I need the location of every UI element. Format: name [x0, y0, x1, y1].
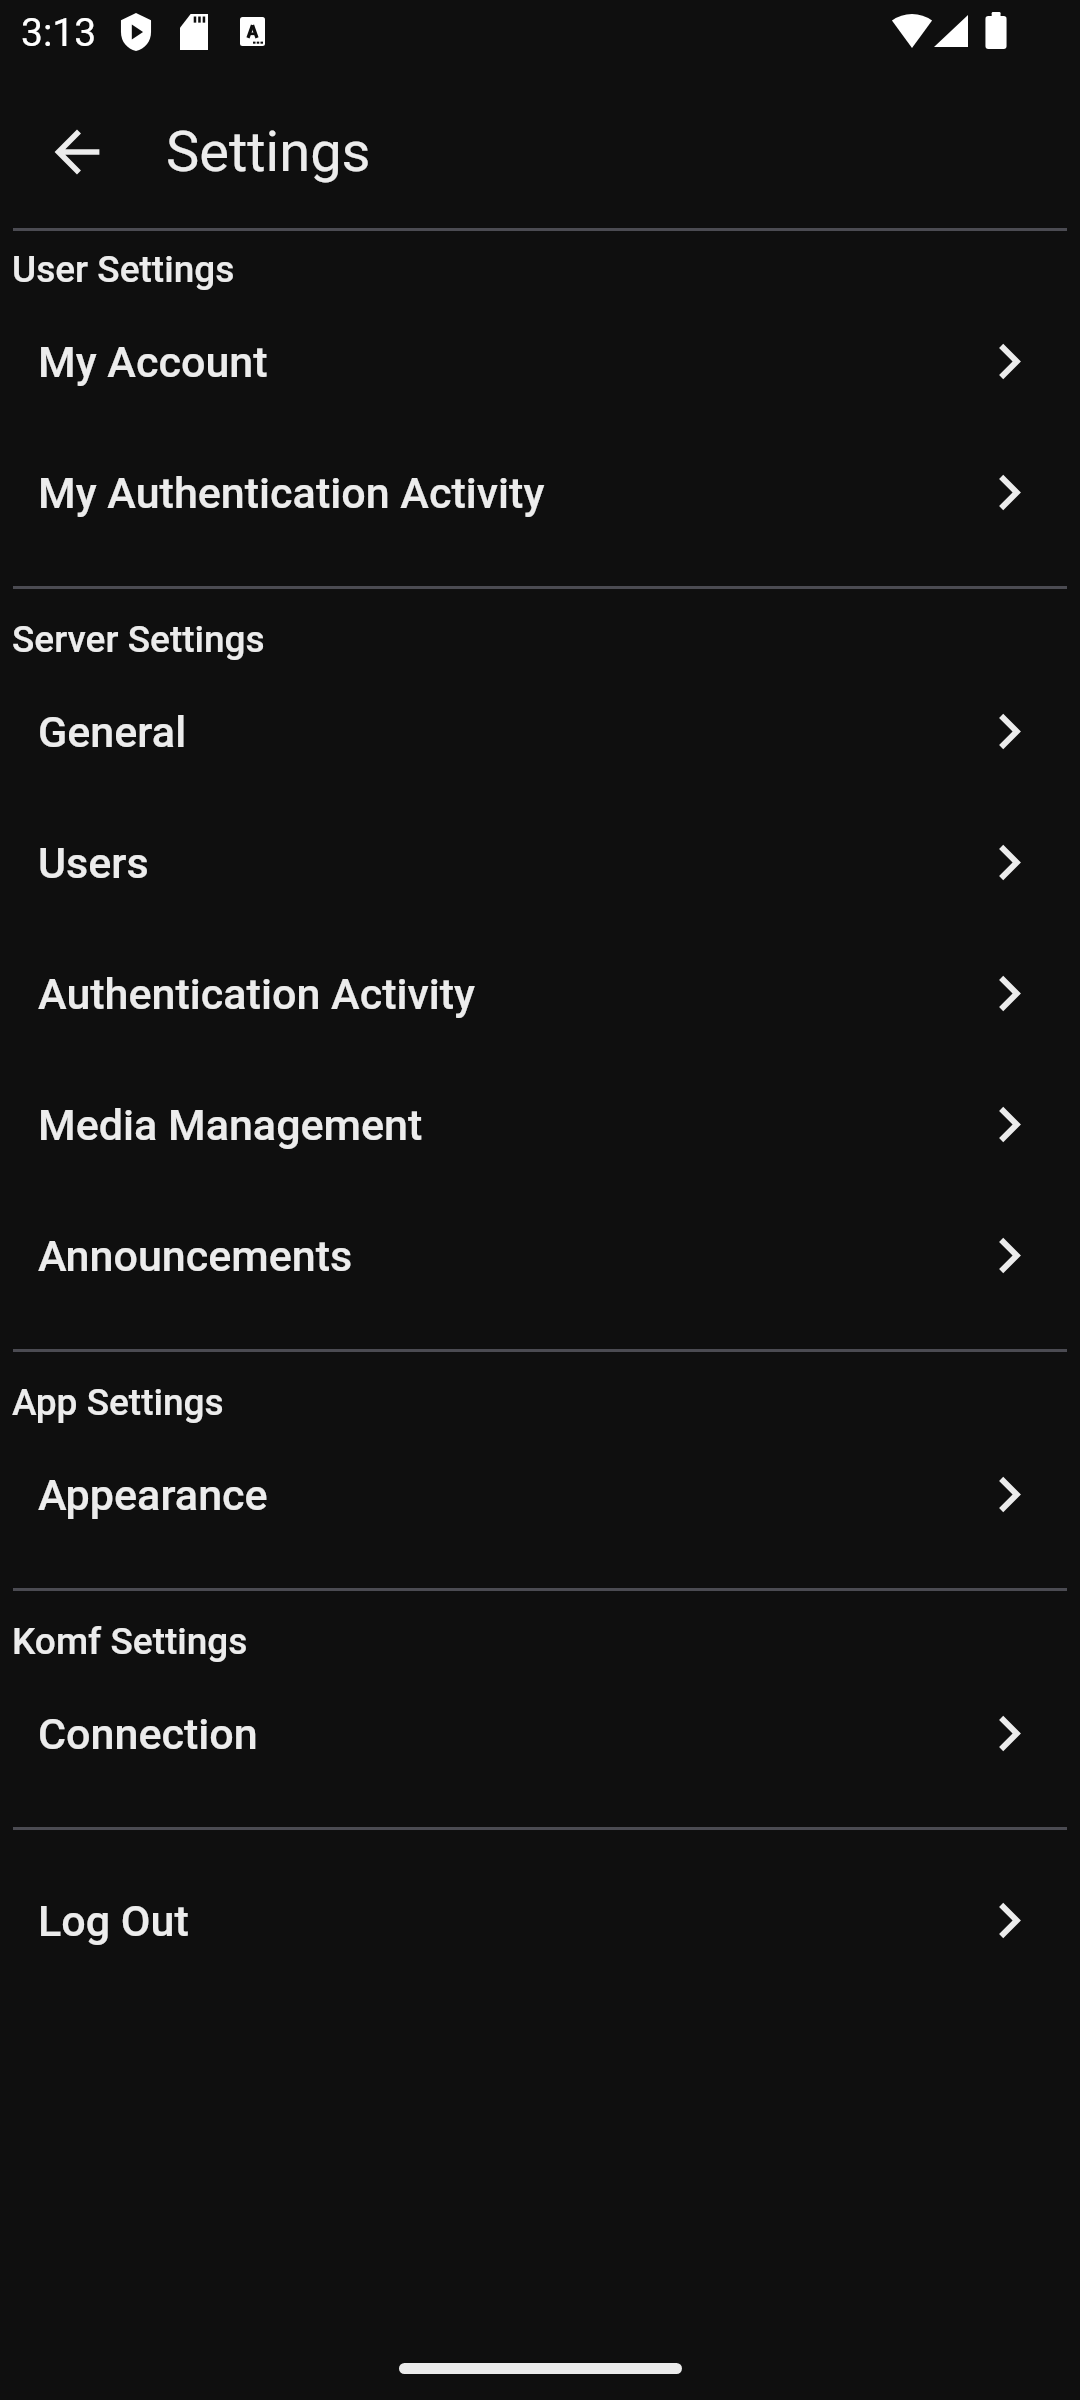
staticText: Log Out — [38, 1896, 980, 1946]
staticText: Media Management — [38, 1100, 980, 1150]
button[interactable]: Media Management — [0, 1059, 1080, 1190]
button[interactable]: My Authentication Activity — [0, 427, 1080, 558]
staticText: Authentication Activity — [38, 969, 980, 1019]
button[interactable]: Appearance — [0, 1429, 1080, 1560]
staticText: App Settings — [12, 1381, 224, 1424]
staticText: Settings — [166, 119, 371, 185]
button[interactable]: Log Out — [0, 1855, 1080, 1986]
staticText: My Authentication Activity — [38, 468, 980, 518]
button[interactable]: Connection — [0, 1668, 1080, 1799]
staticText: 3:13 — [21, 10, 97, 56]
button[interactable]: Announcements — [0, 1190, 1080, 1321]
staticText: Appearance — [38, 1470, 980, 1520]
staticText: Connection — [38, 1709, 980, 1759]
staticText: General — [38, 707, 980, 757]
button[interactable]: Back — [23, 98, 131, 206]
button[interactable]: Authentication Activity — [0, 928, 1080, 1059]
staticText: Server Settings — [12, 618, 265, 661]
button[interactable]: Users — [0, 797, 1080, 928]
staticText: Komf Settings — [12, 1620, 248, 1663]
staticText: User Settings — [12, 248, 235, 291]
staticText: My Account — [38, 337, 980, 387]
staticText: Announcements — [38, 1231, 980, 1281]
button[interactable]: General — [0, 666, 1080, 797]
staticText: Users — [38, 838, 980, 888]
button[interactable]: My Account — [0, 296, 1080, 427]
